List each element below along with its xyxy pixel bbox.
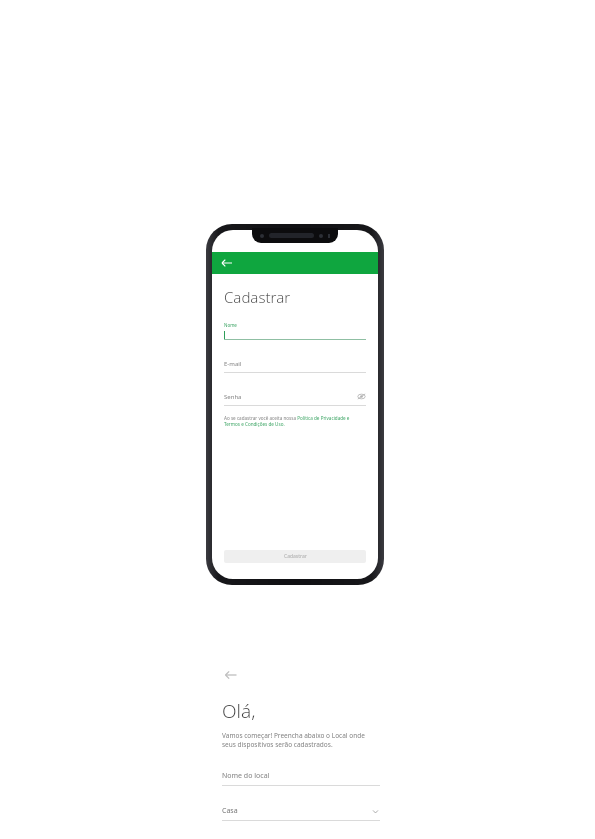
button[interactable]: Senha [224,392,366,406]
button[interactable]: Back [219,255,235,271]
other: Show password [357,392,366,401]
staticText: Cadastrar [224,287,291,307]
staticText: Nome do local [222,771,270,781]
button[interactable]: Nome [224,322,366,340]
staticText: Olá, [222,698,256,724]
button[interactable]: Cadastrar [224,550,366,563]
other: Open dropdown [371,807,380,816]
button[interactable]: Nome do local [222,771,380,786]
staticText: Vamos começar! Preencha abaixo o Local o… [222,731,380,749]
button[interactable]: Back [222,666,240,684]
button[interactable]: Casa [222,806,380,821]
staticText: Cadastrar [284,553,307,560]
staticText: Casa [222,806,238,816]
button[interactable]: E-mail [224,360,366,373]
staticText: Senha [224,393,242,401]
button[interactable]: Ao se cadastrar você aceita nossa Políti… [224,415,366,427]
staticText: E-mail [224,360,242,368]
staticText: Nome [224,322,237,328]
